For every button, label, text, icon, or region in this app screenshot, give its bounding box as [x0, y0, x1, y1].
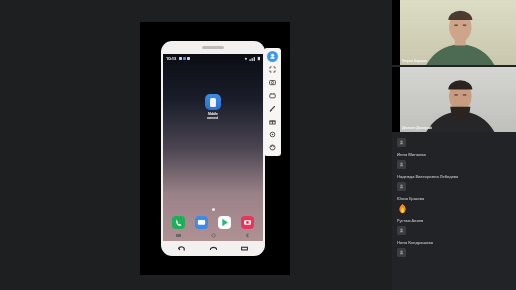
button[interactable]: Participant avatar — [397, 226, 406, 235]
button[interactable]: Participant avatar — [397, 138, 406, 147]
button[interactable]: Gift — [267, 116, 278, 127]
staticText: Инна Минаева — [397, 152, 426, 157]
button[interactable]: Participant — [267, 51, 278, 62]
staticText: Тюрин Кирилл — [402, 58, 427, 63]
button[interactable]: Open app — [205, 94, 221, 110]
staticText: Нина Кондрашова — [397, 240, 433, 245]
button[interactable]: Participant avatar — [397, 160, 406, 169]
button[interactable]: Help — [267, 142, 278, 153]
button[interactable]: Participant avatar — [397, 248, 406, 257]
button[interactable]: App — [218, 216, 231, 229]
button[interactable]: Back — [177, 244, 186, 253]
button[interactable]: Recents — [240, 244, 249, 253]
staticText: Рустам Алиев — [397, 218, 424, 223]
button[interactable]: Settings — [267, 129, 278, 140]
button[interactable]: App — [172, 216, 185, 229]
staticText: Юлия Ершова — [397, 196, 425, 201]
staticText: 10:13 — [166, 56, 177, 61]
button[interactable]: Record — [267, 90, 278, 101]
staticText: Демкин Дмитрий — [402, 125, 432, 130]
button[interactable]: App — [195, 216, 208, 229]
staticText: Надежда Викторовна Лебедева — [397, 174, 459, 179]
button[interactable]: Participant avatar — [397, 182, 406, 191]
button[interactable]: Тюрин Кирилл — [392, 0, 516, 65]
button[interactable]: Screenshot — [267, 77, 278, 88]
button[interactable]: Демкин Дмитрий — [392, 67, 516, 132]
button[interactable]: Annotate — [267, 103, 278, 114]
button[interactable]: Home — [209, 244, 218, 253]
button[interactable]: App — [241, 216, 254, 229]
button[interactable]: Fullscreen — [267, 64, 278, 75]
staticText: connect — [207, 116, 219, 120]
staticText: Mobile — [208, 112, 218, 116]
